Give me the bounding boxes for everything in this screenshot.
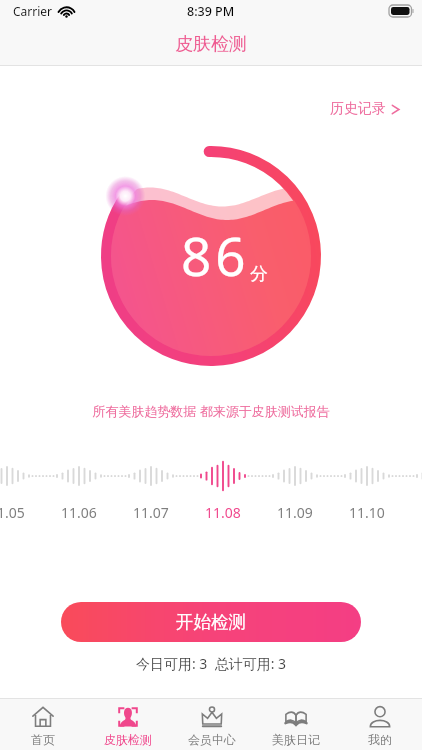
button[interactable]: 首页 [0, 699, 85, 750]
button[interactable]: 我的 [338, 699, 422, 750]
staticText: 86 [181, 219, 250, 291]
staticText: 8:39 PM [187, 3, 235, 20]
staticText: 皮肤检测 [104, 732, 152, 747]
staticText: 分 [250, 263, 268, 286]
staticText: 11.05 [0, 503, 25, 522]
button[interactable]: 美肤日记 [254, 699, 338, 750]
staticText: 11.09 [277, 503, 313, 522]
button[interactable]: 皮肤检测 [85, 699, 170, 750]
staticText: Carrier [13, 3, 53, 19]
staticText: 11.07 [133, 503, 169, 522]
staticText: 11.06 [61, 503, 97, 522]
staticText: 美肤日记 [272, 732, 320, 747]
button[interactable]: 会员中心 [170, 699, 254, 750]
staticText: 首页 [31, 732, 55, 747]
staticText: 11.10 [349, 503, 385, 522]
button[interactable]: 开始检测 [61, 602, 361, 642]
staticText: 所有美肤趋势数据 都来源于皮肤测试报告 [0, 402, 422, 420]
staticText: 我的 [368, 732, 392, 747]
staticText: 11.08 [205, 503, 241, 522]
staticText: 皮肤检测 [175, 33, 247, 56]
staticText: 今日可用: 3 总计可用: 3 [0, 654, 422, 673]
button[interactable]: 历史记录 [326, 96, 404, 122]
staticText: 历史记录 [330, 100, 386, 118]
staticText: 开始检测 [176, 611, 246, 633]
staticText: 会员中心 [188, 732, 236, 747]
